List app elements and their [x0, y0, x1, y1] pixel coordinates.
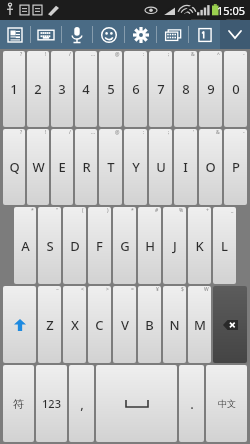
button[interactable]: / [51, 51, 73, 127]
button[interactable]: 123 [36, 365, 67, 442]
button[interactable]: @ [99, 129, 122, 205]
staticText: R [82, 158, 91, 176]
staticText: I [183, 158, 188, 176]
staticText: 3 [58, 80, 66, 98]
button[interactable]: @ [99, 51, 122, 127]
staticText: 5 [107, 80, 115, 98]
button[interactable]: onehand [189, 20, 220, 49]
staticText: 8 [182, 80, 190, 98]
staticText: 中文 [218, 398, 236, 409]
button[interactable]: + [188, 207, 211, 284]
staticText: @ [115, 129, 120, 136]
button[interactable]: Hide keyboard [220, 20, 250, 49]
staticText: Z [46, 316, 54, 334]
staticText: 7 [157, 80, 165, 98]
staticText: = [131, 286, 134, 293]
staticText: 4 [82, 80, 90, 98]
button[interactable]: 中文 [206, 365, 247, 442]
button[interactable]: Shift [3, 286, 36, 363]
button[interactable]: ( [63, 207, 86, 284]
staticText: 15:05 [217, 3, 246, 18]
button[interactable]: > [88, 286, 111, 363]
staticText: 0 [232, 80, 240, 98]
staticText: $ [181, 286, 184, 293]
staticText: ' [193, 129, 195, 136]
staticText: K [195, 237, 204, 255]
button[interactable]: % [163, 207, 186, 284]
button[interactable]: ' [174, 129, 197, 205]
button[interactable]: … [75, 129, 97, 205]
button[interactable]: float [157, 20, 188, 49]
button[interactable]: W [188, 286, 211, 363]
button[interactable]: , [69, 365, 94, 442]
button[interactable]: . [179, 365, 204, 442]
staticText: & [191, 51, 195, 58]
staticText: < [81, 286, 84, 293]
button[interactable]: 符 [3, 365, 34, 442]
button[interactable]: mic [62, 20, 92, 49]
staticText: * [131, 207, 134, 214]
staticText: V [121, 316, 129, 334]
button[interactable]: ; [149, 129, 172, 205]
button[interactable]: ~ [38, 286, 61, 363]
staticText: G [120, 237, 130, 255]
staticText: 1 [10, 80, 18, 98]
button[interactable]: ! [27, 129, 49, 205]
button[interactable]: Backspace [213, 286, 247, 363]
button[interactable]: settings [125, 20, 156, 49]
button[interactable]: " [38, 207, 61, 284]
staticText: . [190, 395, 194, 413]
staticText: * [31, 207, 34, 214]
staticText: _ [231, 207, 234, 214]
staticText: ; [168, 51, 170, 58]
button[interactable]: ! [27, 51, 49, 127]
staticText: - [243, 129, 245, 136]
button[interactable]: keyboard [31, 20, 61, 49]
staticText: % [179, 207, 184, 214]
staticText: … [91, 129, 95, 136]
button[interactable]: : [124, 51, 147, 127]
staticText: 9 [207, 80, 215, 98]
button[interactable]: ^ [199, 51, 222, 127]
staticText: P [232, 158, 240, 176]
button[interactable]: ? [3, 51, 25, 127]
button[interactable]: emoji [93, 20, 124, 49]
staticText: 6 [132, 80, 140, 98]
button[interactable]: clipboard [0, 20, 30, 49]
staticText: E [58, 158, 66, 176]
button[interactable]: Space [96, 365, 177, 442]
button[interactable]: … [75, 51, 97, 127]
button[interactable]: & [174, 51, 197, 127]
button[interactable]: & [199, 129, 222, 205]
staticText: U [156, 158, 166, 176]
staticText: " [56, 207, 59, 214]
button[interactable]: $ [163, 286, 186, 363]
staticText: X [71, 316, 79, 334]
button[interactable]: / [51, 129, 73, 205]
staticText: H [145, 237, 155, 255]
button[interactable]: # [138, 207, 161, 284]
staticText: > [106, 286, 109, 293]
button[interactable]: - [224, 51, 247, 127]
staticText: / [69, 129, 71, 136]
button[interactable]: = [113, 286, 136, 363]
button[interactable]: - [224, 129, 247, 205]
staticText: T [107, 158, 115, 176]
staticText: A [21, 237, 30, 255]
staticText: # [155, 207, 159, 214]
button[interactable]: ¥ [138, 286, 161, 363]
staticText: … [91, 51, 95, 58]
button[interactable]: : [124, 129, 147, 205]
button[interactable]: * [113, 207, 136, 284]
button[interactable]: * [14, 207, 36, 284]
button[interactable]: ? [3, 129, 25, 205]
button[interactable]: ; [149, 51, 172, 127]
button[interactable]: _ [213, 207, 236, 284]
staticText: L [221, 237, 228, 255]
button[interactable]: ) [88, 207, 111, 284]
staticText: Q [9, 158, 20, 176]
staticText: + [206, 207, 209, 214]
button[interactable]: < [63, 286, 86, 363]
staticText: W [32, 158, 45, 176]
staticText: ) [107, 207, 109, 214]
